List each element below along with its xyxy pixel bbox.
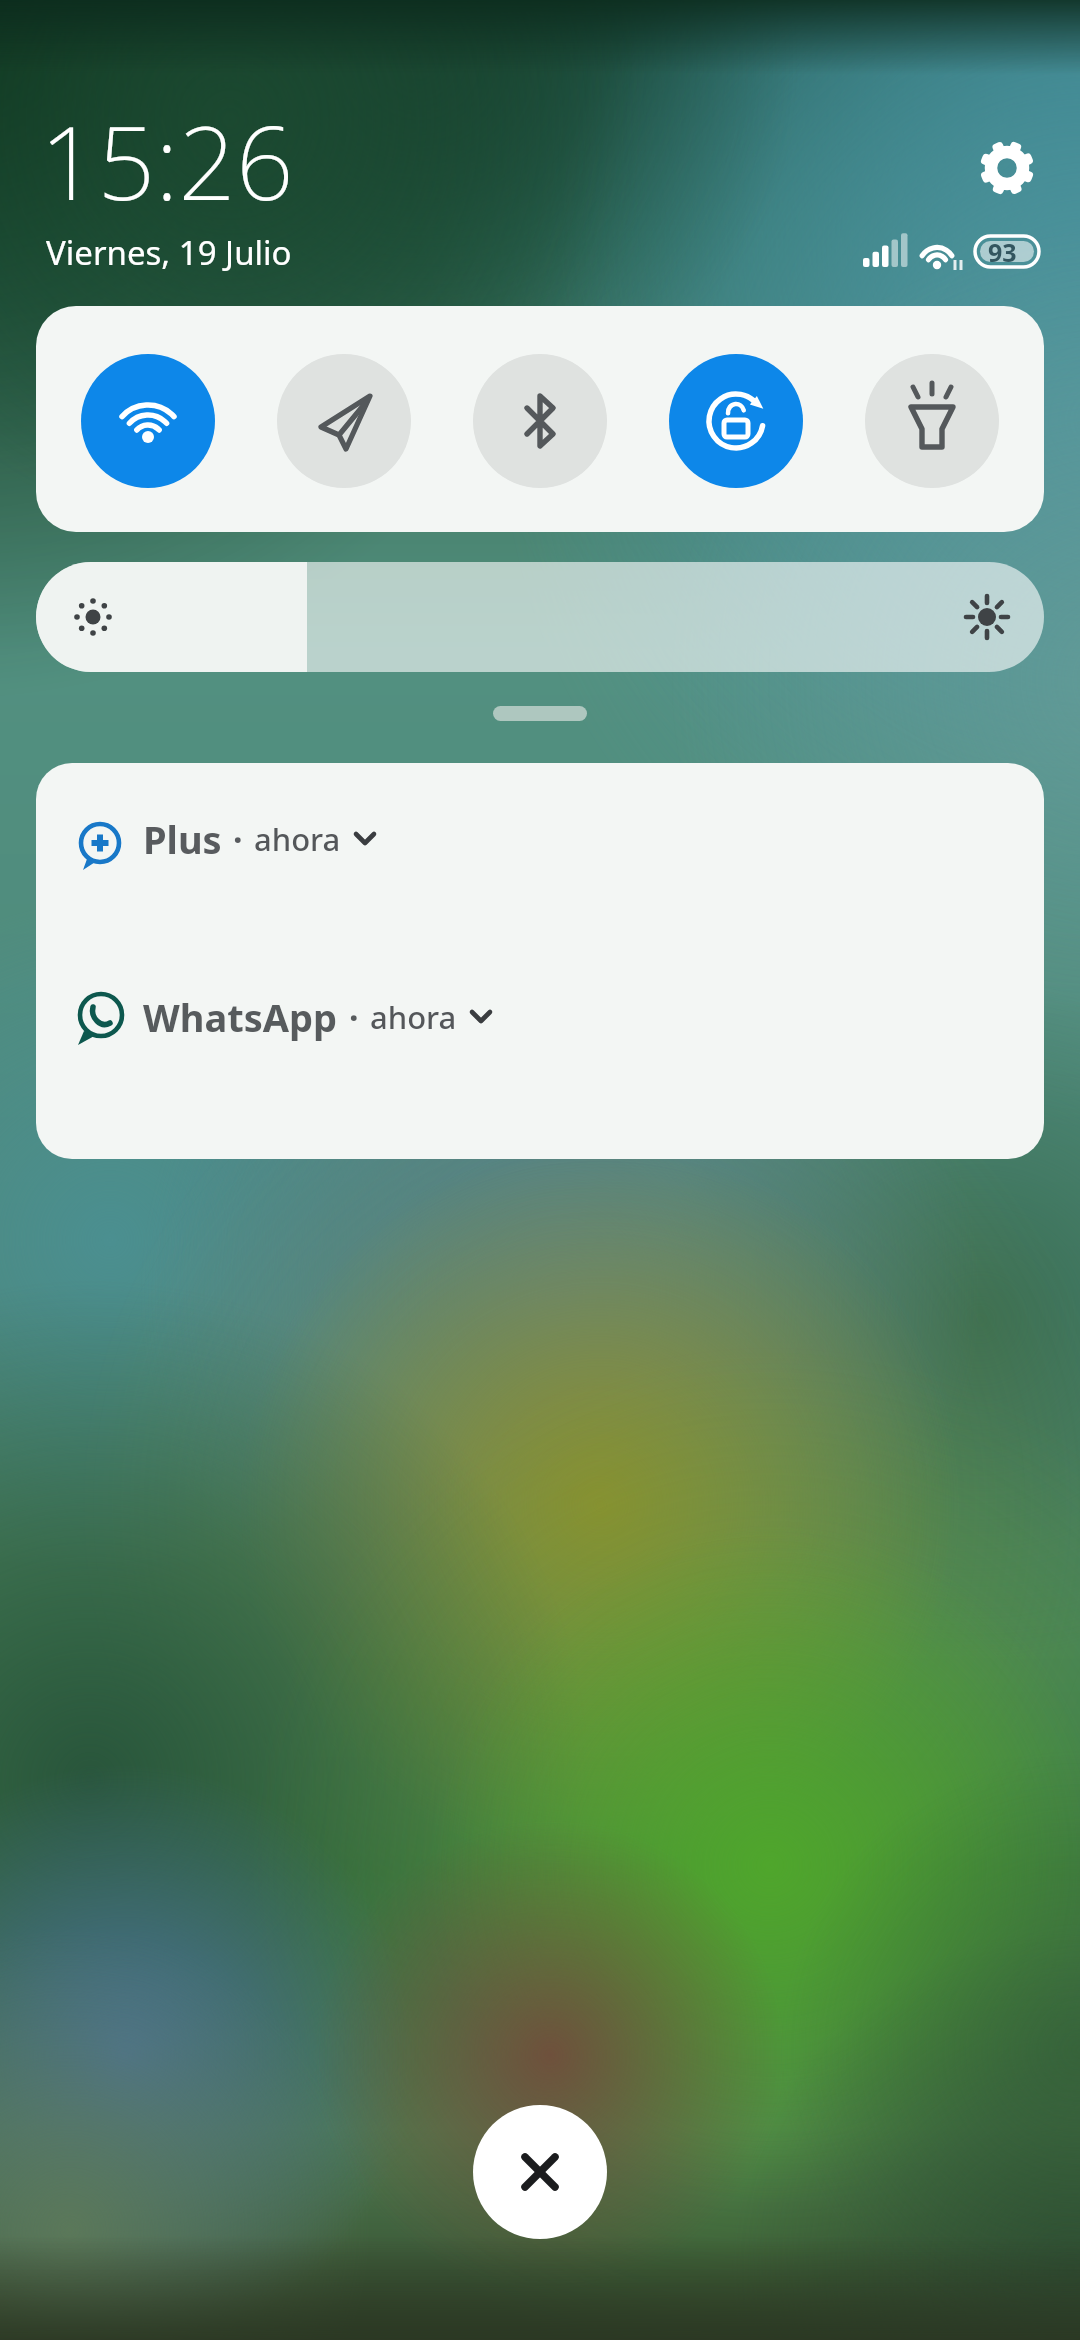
button[interactable] [669,354,803,488]
staticText: 15:26 [40,92,294,230]
staticText: 93 [988,235,1017,269]
staticText: ahora [254,818,341,860]
staticText: Plus [143,813,222,865]
staticText: · [349,994,359,1040]
button[interactable] [865,354,999,488]
button[interactable] [81,354,215,488]
button[interactable]: Plus [36,763,1044,961]
button[interactable] [980,140,1036,196]
button[interactable] [473,354,607,488]
button[interactable]: WhatsApp [36,961,1044,1159]
button[interactable] [36,562,1044,672]
button[interactable] [277,354,411,488]
staticText: WhatsApp [143,991,338,1043]
staticText: Viernes, 19 Julio [46,230,292,275]
staticText: · [233,816,243,862]
staticText: ahora [370,996,457,1038]
button[interactable] [473,2105,607,2239]
